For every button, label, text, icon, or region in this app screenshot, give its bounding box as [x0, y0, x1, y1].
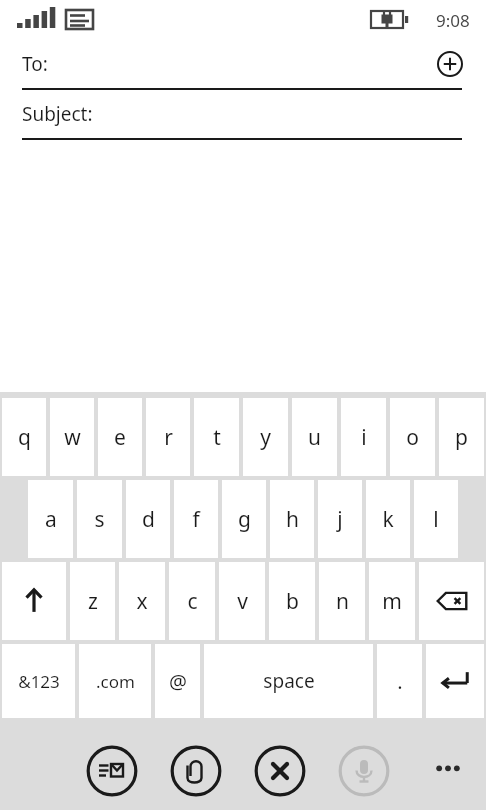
staticText: @ — [169, 668, 187, 695]
button[interactable]: .com — [79, 644, 151, 718]
staticText: a — [45, 505, 57, 534]
button[interactable]: t — [194, 398, 239, 476]
staticText: s — [94, 505, 105, 534]
staticText: f — [192, 505, 200, 534]
staticText: space — [263, 668, 315, 694]
button[interactable]: q — [2, 398, 46, 476]
staticText: p — [455, 423, 468, 452]
button[interactable]: c — [169, 562, 215, 640]
staticText: Subject: — [22, 101, 93, 127]
staticText: To: — [22, 51, 48, 77]
staticText: t — [213, 423, 221, 452]
staticText: r — [164, 423, 173, 452]
button[interactable]: o — [390, 398, 435, 476]
button[interactable]: a — [28, 480, 73, 558]
button[interactable]: Add recipient — [436, 50, 464, 78]
staticText: k — [382, 505, 394, 534]
staticText: w — [64, 423, 81, 452]
staticText: b — [286, 587, 299, 616]
button[interactable]: j — [318, 480, 362, 558]
button[interactable]: s — [77, 480, 122, 558]
staticText: n — [336, 587, 349, 616]
button[interactable]: More options — [428, 751, 468, 791]
button[interactable]: w — [50, 398, 94, 476]
button[interactable]: &123 — [2, 644, 75, 718]
staticText: x — [136, 587, 148, 616]
staticText: i — [361, 423, 367, 452]
button[interactable]: . — [377, 644, 422, 718]
staticText: y — [260, 423, 271, 452]
staticText: 9:08 — [436, 9, 470, 32]
staticText: c — [187, 587, 198, 616]
staticText: m — [382, 587, 402, 616]
button[interactable]: n — [319, 562, 365, 640]
button[interactable]: p — [439, 398, 484, 476]
button[interactable]: Send — [86, 745, 138, 797]
staticText: o — [406, 423, 419, 452]
staticText: g — [238, 505, 251, 534]
button[interactable]: v — [219, 562, 265, 640]
button[interactable]: x — [119, 562, 165, 640]
staticText: d — [142, 505, 155, 534]
button[interactable]: h — [270, 480, 314, 558]
button[interactable]: r — [146, 398, 190, 476]
staticText: j — [337, 505, 343, 534]
button[interactable]: To: — [22, 40, 464, 88]
button[interactable]: Attach — [170, 745, 222, 797]
button[interactable]: Voice input — [338, 745, 390, 797]
button[interactable]: d — [126, 480, 170, 558]
button[interactable]: l — [414, 480, 458, 558]
button[interactable]: Shift — [2, 562, 66, 640]
button[interactable]: space — [204, 644, 373, 718]
staticText: .com — [96, 670, 135, 693]
button[interactable]: u — [292, 398, 337, 476]
button[interactable]: y — [243, 398, 288, 476]
staticText: e — [114, 423, 126, 452]
staticText: u — [308, 423, 321, 452]
button[interactable]: i — [341, 398, 386, 476]
button[interactable]: Backspace — [419, 562, 484, 640]
button[interactable]: z — [70, 562, 115, 640]
staticText: . — [397, 668, 403, 695]
button[interactable]: Subject: — [22, 90, 464, 138]
staticText: v — [237, 587, 248, 616]
button[interactable]: b — [269, 562, 315, 640]
staticText: z — [88, 587, 98, 616]
button[interactable]: k — [366, 480, 410, 558]
button[interactable]: f — [174, 480, 218, 558]
button[interactable]: Enter — [426, 644, 484, 718]
button[interactable]: g — [222, 480, 266, 558]
staticText: q — [18, 423, 31, 452]
staticText: l — [433, 505, 439, 534]
button[interactable]: e — [98, 398, 142, 476]
button[interactable]: Cancel — [254, 745, 306, 797]
staticText: h — [286, 505, 299, 534]
button[interactable]: m — [369, 562, 415, 640]
button[interactable]: @ — [155, 644, 200, 718]
staticText: &123 — [18, 670, 60, 693]
